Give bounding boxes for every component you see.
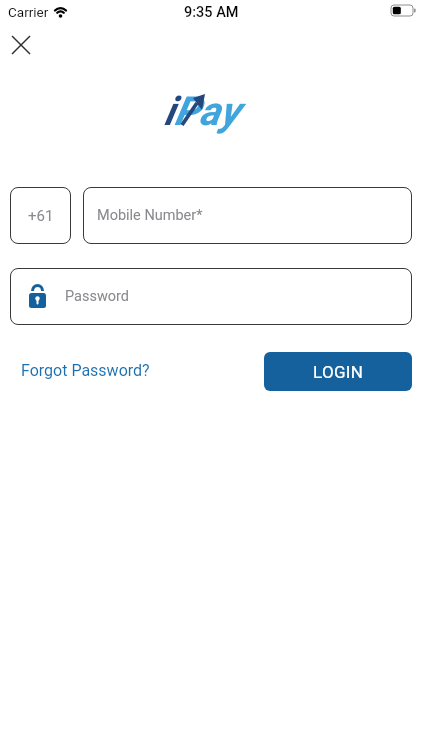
button[interactable]: Password	[10, 268, 412, 325]
button[interactable]	[6, 30, 36, 60]
staticText: Mobile Number*	[97, 207, 203, 224]
button[interactable]: Forgot Password?	[21, 361, 150, 380]
staticText: 9:35 AM	[184, 4, 239, 21]
staticText: Password	[65, 288, 130, 305]
button[interactable]: +61	[10, 187, 71, 244]
button[interactable]: Mobile Number*	[83, 187, 412, 244]
staticText: LOGIN	[313, 362, 364, 382]
staticText: iPay	[164, 88, 240, 135]
staticText: +61	[28, 207, 54, 225]
staticText: Carrier	[8, 4, 49, 20]
button[interactable]: LOGIN	[264, 352, 412, 391]
